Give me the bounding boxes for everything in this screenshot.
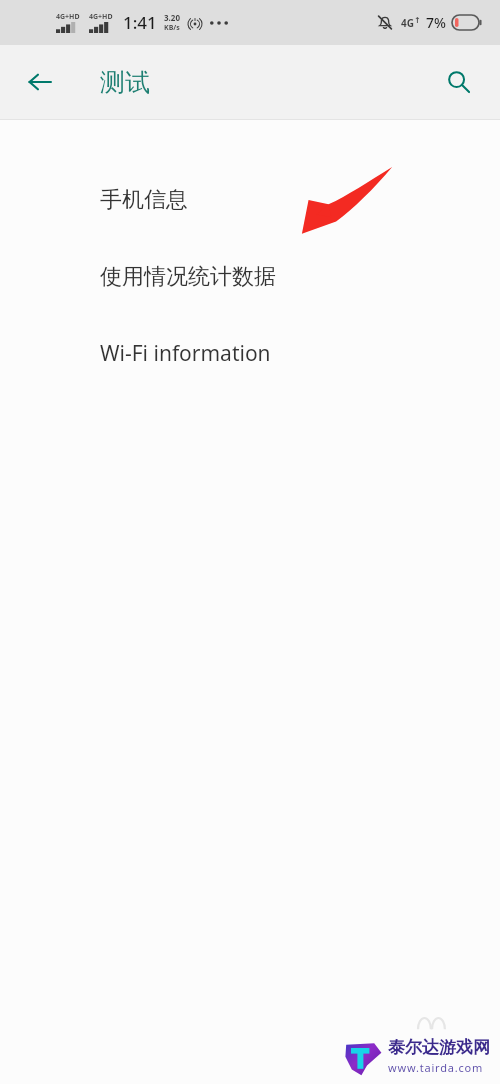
button[interactable]: 手机信息 — [0, 120, 500, 227]
staticText: KB/s — [164, 23, 180, 33]
staticText: 使用情况统计数据 — [100, 263, 276, 291]
staticText: Wi-Fi information — [100, 339, 271, 368]
button[interactable]: Wi-Fi information — [0, 304, 500, 380]
staticText: 4G+HD — [56, 12, 80, 22]
staticText: 7% — [426, 13, 446, 32]
staticText: 1:41 — [123, 11, 157, 34]
button[interactable]: Back — [14, 56, 66, 108]
staticText: 4G — [401, 16, 414, 30]
staticText: ↑ — [414, 16, 421, 25]
staticText: 手机信息 — [100, 186, 188, 214]
staticText: 泰尔达游戏网 — [388, 1037, 490, 1058]
staticText: www.tairda.com — [388, 1060, 484, 1075]
button[interactable]: Search — [434, 57, 484, 107]
staticText: 测试 — [100, 67, 150, 98]
button[interactable]: 使用情况统计数据 — [0, 227, 500, 304]
staticText: 4G+HD — [89, 12, 113, 22]
staticText: 3.20 — [164, 12, 180, 23]
